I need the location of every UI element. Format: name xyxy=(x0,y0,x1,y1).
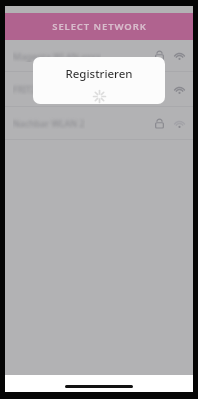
other: Signal strength xyxy=(173,117,186,130)
staticText: SELECT NETWORK xyxy=(52,20,147,33)
other: Signal strength xyxy=(173,83,186,96)
staticText: Nachbar WLAN 2 xyxy=(13,117,85,129)
other: Signal strength xyxy=(173,49,186,62)
button[interactable]: Registrieren xyxy=(33,57,165,104)
other: Secured network xyxy=(154,50,165,61)
button[interactable]: FRITZ!Box 7590 NX xyxy=(5,72,193,106)
button[interactable]: Magenta WLAN-xxxx xyxy=(5,40,193,71)
staticText: FRITZ!Box 7590 NX xyxy=(13,83,93,95)
staticText: Magenta WLAN-xxxx xyxy=(13,50,101,62)
staticText: Registrieren xyxy=(65,66,133,82)
other: Secured network xyxy=(154,118,165,129)
button[interactable]: SELECT NETWORK xyxy=(5,13,193,40)
button[interactable]: Nachbar WLAN 2 xyxy=(5,107,193,139)
